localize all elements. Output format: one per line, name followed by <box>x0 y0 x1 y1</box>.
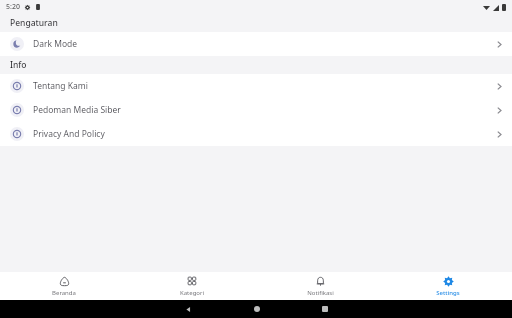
button[interactable]: Tentang Kami <box>0 74 512 98</box>
staticText: Dark Mode <box>33 38 78 50</box>
staticText: Tentang Kami <box>33 80 88 92</box>
button[interactable]: Privacy And Policy <box>0 122 512 146</box>
button[interactable]: Dark Mode <box>0 32 512 56</box>
staticText: Beranda <box>52 289 76 297</box>
staticText: Kategori <box>180 289 204 297</box>
staticText: Settings <box>436 289 460 297</box>
staticText: Pedoman Media Siber <box>33 104 121 116</box>
staticText: Pengaturan <box>10 17 58 29</box>
staticText: Info <box>10 59 27 71</box>
button[interactable]: Settings <box>384 272 512 300</box>
button[interactable]: Kategori <box>128 272 256 300</box>
staticText: 5:20 <box>6 2 20 12</box>
staticText: Privacy And Policy <box>33 128 105 140</box>
button[interactable]: Notifikasi <box>256 272 384 300</box>
button[interactable]: Beranda <box>0 272 128 300</box>
button[interactable]: Pedoman Media Siber <box>0 98 512 122</box>
staticText: Notifikasi <box>307 289 334 297</box>
